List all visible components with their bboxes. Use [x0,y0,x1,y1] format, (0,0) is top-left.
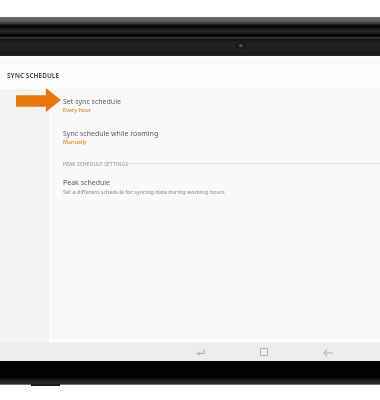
staticText: SYNC SCHEDULE [7,71,60,80]
button[interactable]: Home [257,345,271,359]
button[interactable]: Peak schedule [51,171,380,200]
button[interactable]: Sync schedule while roaming [51,122,380,153]
staticText: Every hour [63,106,91,113]
button[interactable]: Set sync schedule [51,90,380,122]
button[interactable]: Back [321,345,335,359]
staticText: PEAK SCHEDULE SETTINGS [63,161,129,168]
staticText: Set a different schedule for syncing dat… [63,188,225,195]
staticText: Manually [63,138,87,145]
staticText: Set sync schedule [63,97,121,107]
staticText: Peak schedule [63,178,111,188]
button[interactable]: Recent apps [193,345,207,359]
staticText: Sync schedule while roaming [63,129,159,139]
other: Pointer arrow [16,88,61,112]
